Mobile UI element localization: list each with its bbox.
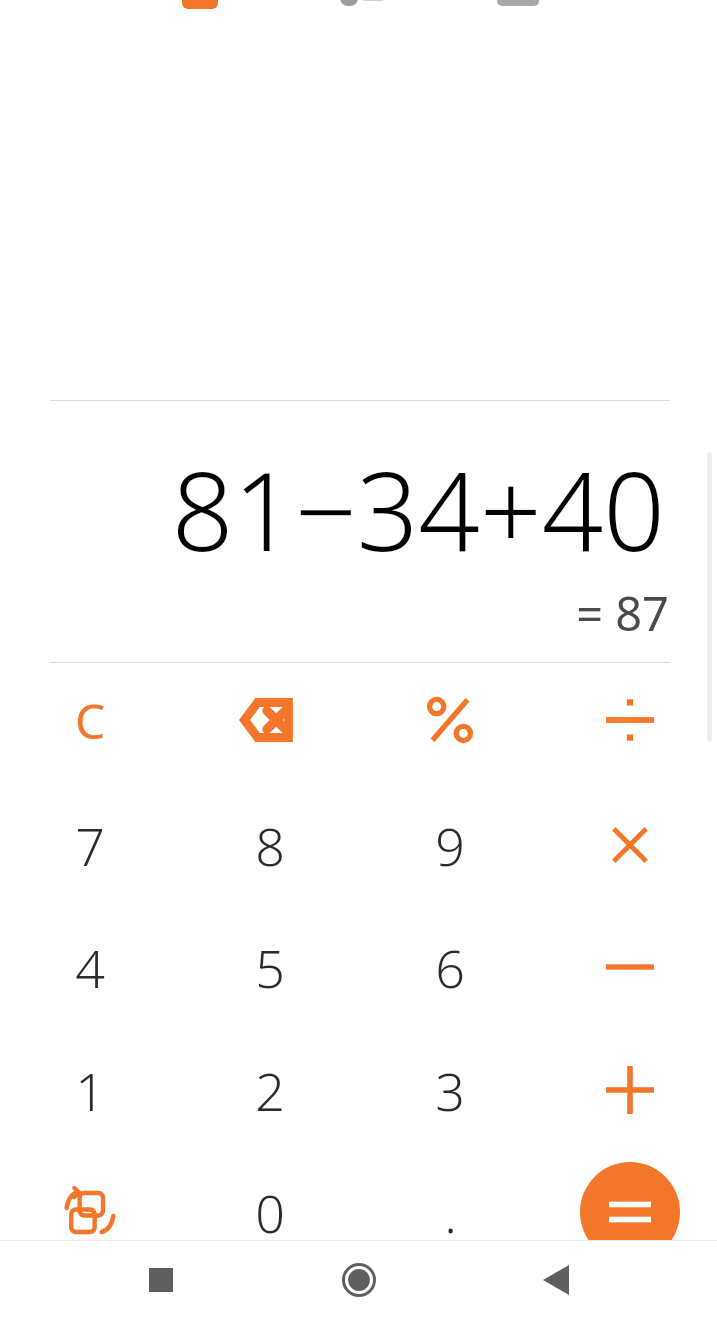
- staticText: 81−34+40: [0, 436, 665, 583]
- button[interactable]: Percent: [370, 661, 530, 779]
- staticText: 0: [255, 1177, 285, 1248]
- staticText: 5: [255, 932, 285, 1003]
- button[interactable]: Recent apps: [125, 1244, 197, 1316]
- staticText: 3: [435, 1055, 465, 1126]
- staticText: 1: [75, 1055, 105, 1126]
- button[interactable]: Clear: [10, 661, 170, 779]
- button[interactable]: Plus: [550, 1031, 710, 1149]
- staticText: 2: [255, 1055, 285, 1126]
- staticText: C: [75, 688, 106, 753]
- button[interactable]: 8: [190, 786, 350, 904]
- button[interactable]: Multiply: [550, 786, 710, 904]
- button[interactable]: 1: [10, 1031, 170, 1149]
- button[interactable]: 4: [10, 908, 170, 1026]
- button[interactable]: 3: [370, 1031, 530, 1149]
- button[interactable]: Home: [323, 1244, 395, 1316]
- button[interactable]: Divide: [550, 661, 710, 779]
- button[interactable]: Minus: [550, 908, 710, 1026]
- staticText: 4: [75, 932, 105, 1003]
- button[interactable]: 5: [190, 908, 350, 1026]
- staticText: 8: [255, 810, 285, 881]
- staticText: = 87: [0, 581, 669, 645]
- button[interactable]: 0: [190, 1153, 350, 1271]
- staticText: .: [444, 1177, 457, 1248]
- button[interactable]: Back: [520, 1244, 592, 1316]
- button[interactable]: .: [370, 1153, 530, 1271]
- button[interactable]: Backspace: [190, 661, 350, 779]
- staticText: 7: [75, 810, 105, 881]
- button[interactable]: 9: [370, 786, 530, 904]
- staticText: 6: [435, 932, 465, 1003]
- button[interactable]: 6: [370, 908, 530, 1026]
- button[interactable]: Equals: [580, 1162, 680, 1262]
- button[interactable]: 7: [10, 786, 170, 904]
- staticText: 9: [435, 810, 465, 881]
- button[interactable]: Switch layout: [10, 1153, 170, 1271]
- button[interactable]: 2: [190, 1031, 350, 1149]
